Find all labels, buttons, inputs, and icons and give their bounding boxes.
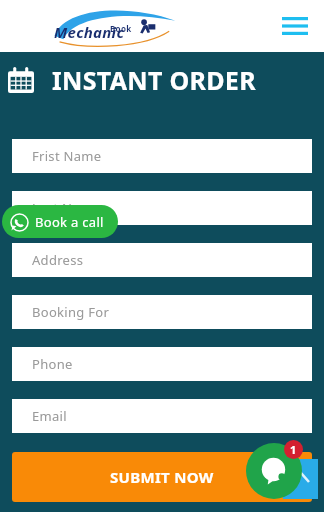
staticText: SUBMIT NOW: [110, 467, 214, 487]
button[interactable]: Frist Name: [12, 139, 312, 173]
staticText: Email: [32, 407, 67, 425]
staticText: Last Name: [32, 199, 100, 217]
button[interactable]: Last Name: [12, 191, 312, 225]
button[interactable]: Menu: [280, 11, 310, 41]
staticText: Book a call: [35, 213, 104, 231]
button[interactable]: Scroll to top: [283, 459, 318, 499]
staticText: Frist Name: [32, 147, 102, 165]
staticText: 1: [290, 442, 297, 457]
staticText: Booking For: [32, 303, 110, 321]
staticText: Mechanic: [54, 22, 124, 42]
button[interactable]: Address: [12, 243, 312, 277]
button[interactable]: Chat: [246, 443, 302, 499]
staticText: INSTANT ORDER: [52, 63, 256, 97]
staticText: Address: [32, 251, 84, 269]
staticText: Book: [110, 23, 132, 34]
button[interactable]: Booking For: [12, 295, 312, 329]
staticText: Phone: [32, 355, 73, 373]
button[interactable]: Book a call: [2, 205, 118, 238]
button[interactable]: SUBMIT NOW: [12, 452, 312, 502]
button[interactable]: Email: [12, 399, 312, 433]
button[interactable]: Phone: [12, 347, 312, 381]
